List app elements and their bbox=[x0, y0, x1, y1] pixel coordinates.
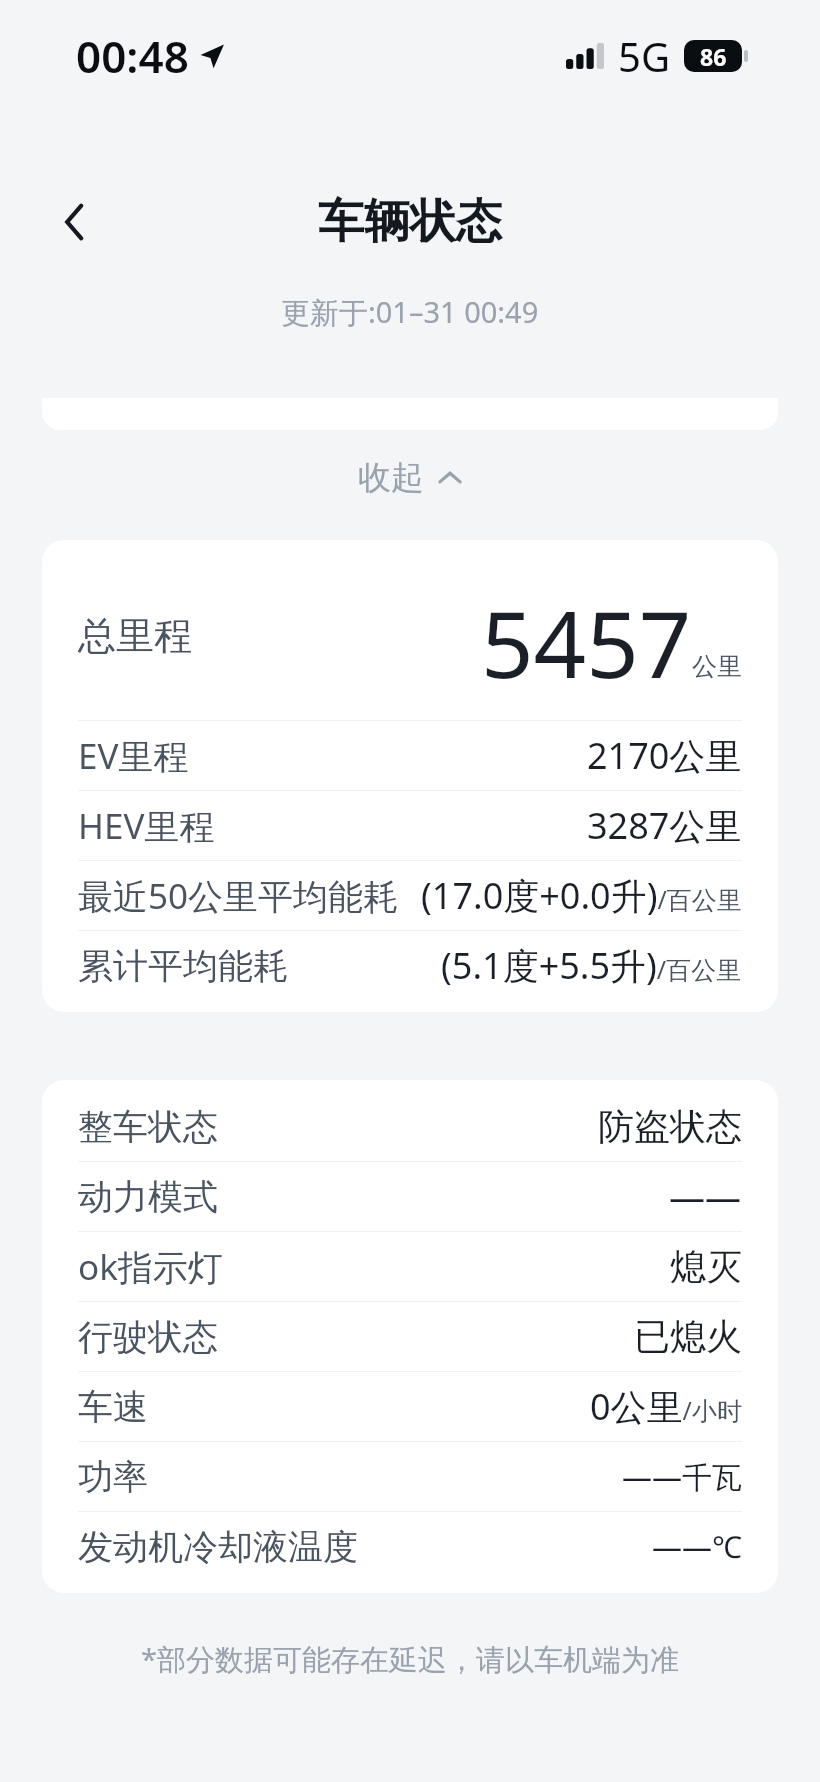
staticText: 更新于:01–31 00:49 bbox=[281, 292, 539, 332]
button[interactable]: 整车状态 bbox=[78, 1092, 742, 1161]
staticText: 公里 bbox=[692, 651, 742, 682]
button[interactable]: 最近50公里平均能耗 bbox=[78, 861, 742, 930]
staticText: 动力模式 bbox=[78, 1175, 218, 1219]
staticText: 发动机冷却液温度 bbox=[78, 1525, 358, 1569]
staticText: ok指示灯 bbox=[78, 1243, 223, 1291]
staticText: 车速 bbox=[78, 1385, 148, 1429]
staticText: 功率 bbox=[78, 1455, 148, 1499]
staticText: 2170公里 bbox=[587, 731, 742, 780]
staticText: 行驶状态 bbox=[78, 1315, 218, 1359]
staticText: 已熄火 bbox=[634, 1314, 742, 1359]
button[interactable]: EV里程 bbox=[78, 721, 742, 790]
staticText: 防盗状态 bbox=[598, 1104, 742, 1149]
button[interactable]: 总里程 bbox=[78, 580, 742, 692]
staticText: (5.1度+5.5升)/百公里 bbox=[441, 941, 742, 990]
staticText: 5G bbox=[618, 29, 670, 83]
staticText: 3287公里 bbox=[587, 801, 742, 850]
staticText: 整车状态 bbox=[78, 1105, 218, 1149]
staticText: 总里程 bbox=[78, 612, 192, 660]
button[interactable]: 发动机冷却液温度 bbox=[78, 1512, 742, 1581]
staticText: (17.0度+0.0升)/百公里 bbox=[421, 871, 742, 920]
staticText: EV里程 bbox=[78, 732, 189, 780]
staticText: 86 bbox=[700, 41, 727, 72]
staticText: 熄灭 bbox=[670, 1244, 742, 1289]
staticText: 5457 bbox=[481, 580, 692, 692]
staticText: 0公里/小时 bbox=[590, 1382, 742, 1431]
button[interactable]: 车速 bbox=[78, 1372, 742, 1441]
button[interactable]: HEV里程 bbox=[78, 791, 742, 860]
button[interactable]: 动力模式 bbox=[78, 1162, 742, 1231]
staticText: ——千瓦 bbox=[622, 1456, 742, 1497]
staticText: 车辆状态 bbox=[318, 193, 502, 251]
staticText: HEV里程 bbox=[78, 802, 215, 850]
staticText: 00:48 bbox=[76, 26, 189, 86]
button[interactable]: Back bbox=[40, 186, 112, 258]
staticText: 收起 bbox=[358, 457, 424, 499]
button[interactable]: ok指示灯 bbox=[78, 1232, 742, 1301]
staticText: ——℃ bbox=[652, 1526, 742, 1567]
button[interactable]: 累计平均能耗 bbox=[78, 931, 742, 1000]
staticText: *部分数据可能存在延迟，请以车机端为准 bbox=[141, 1639, 679, 1679]
button[interactable]: 行驶状态 bbox=[78, 1302, 742, 1371]
staticText: 累计平均能耗 bbox=[78, 944, 288, 988]
button[interactable]: 功率 bbox=[78, 1442, 742, 1511]
button[interactable]: 收起 bbox=[0, 444, 820, 512]
staticText: 最近50公里平均能耗 bbox=[78, 872, 399, 920]
staticText: —— bbox=[669, 1172, 742, 1221]
